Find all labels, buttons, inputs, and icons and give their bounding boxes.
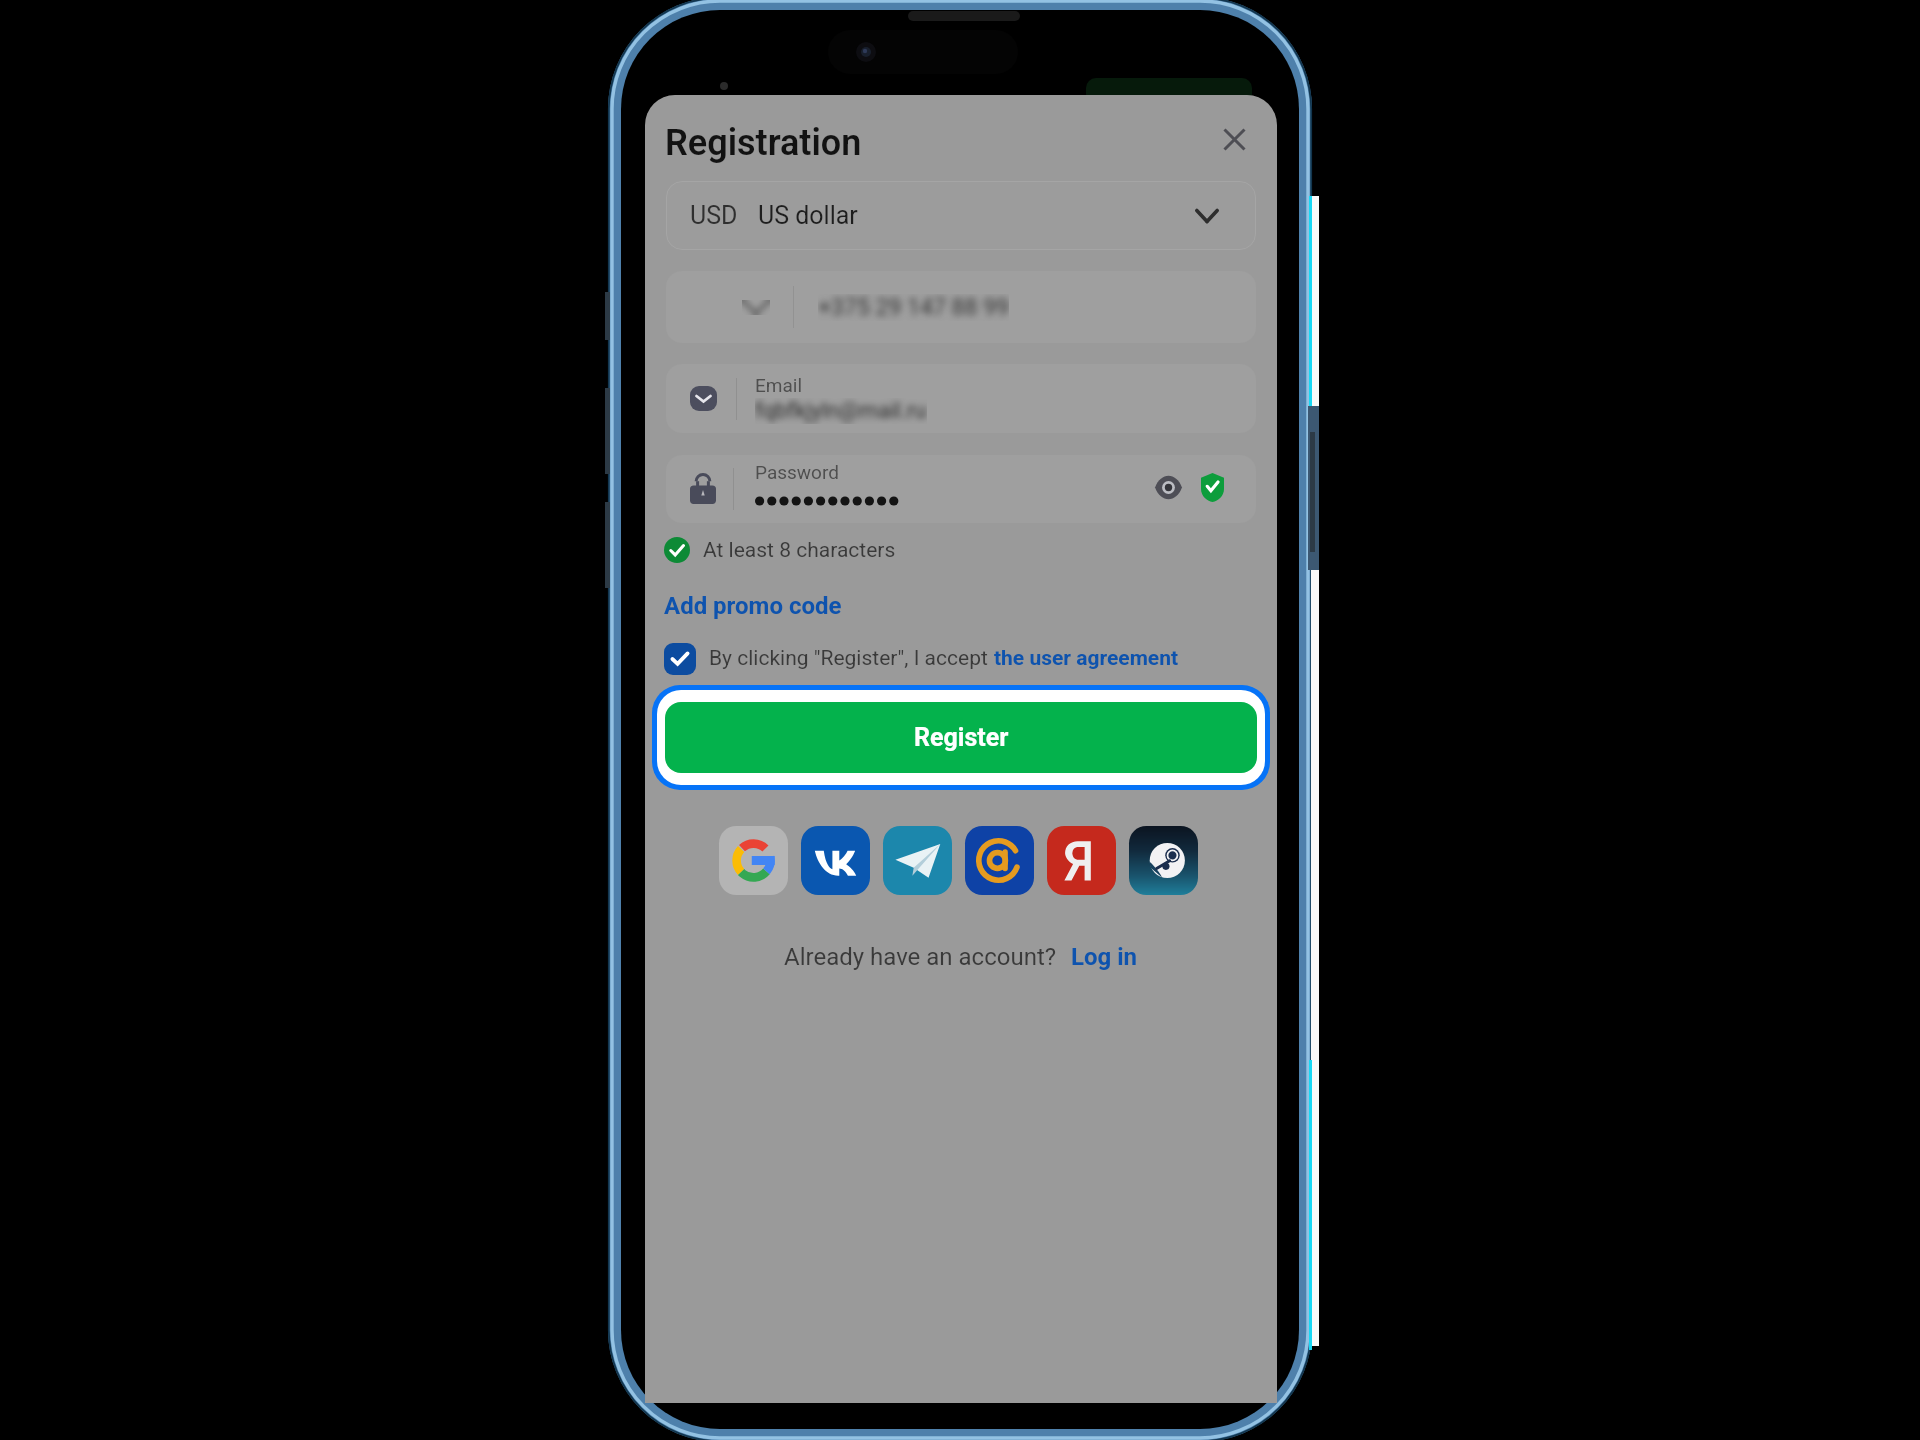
button[interactable]: Register	[665, 702, 1257, 773]
staticText: Log in	[1071, 943, 1138, 971]
button[interactable]: +375 29 147 88 99	[666, 271, 1256, 343]
button[interactable]: Password	[666, 455, 1256, 523]
button[interactable]: Sign in with Steam	[1129, 826, 1198, 895]
button[interactable]: Close	[1212, 117, 1256, 161]
button[interactable]: Sign in with Telegram	[883, 826, 952, 895]
staticText: Already have an account?	[784, 943, 1057, 971]
button[interactable]: Sign in with VK	[801, 826, 870, 895]
staticText: US dollar	[758, 201, 858, 230]
button[interactable]: Log in	[1071, 943, 1138, 971]
button[interactable]: Password secure	[1196, 473, 1228, 505]
button[interactable]: Sign in with Google	[719, 826, 788, 895]
staticText: Add promo code	[664, 592, 842, 620]
button[interactable]: Email	[666, 364, 1256, 433]
staticText: Register	[914, 723, 1009, 752]
staticText: +375 29 147 88 99	[818, 294, 1009, 321]
staticText: At least 8 characters	[703, 538, 896, 563]
button[interactable]: Sign in with Yandex	[1047, 826, 1116, 895]
staticText: the user agreement	[994, 646, 1179, 671]
button[interactable]: By clicking "Register", I accept	[664, 642, 1277, 675]
staticText: Registration	[665, 122, 862, 164]
staticText: By clicking "Register", I accept	[709, 646, 994, 671]
button[interactable]: Add promo code	[664, 589, 842, 623]
staticText: Password	[755, 461, 839, 483]
button[interactable]: USD	[666, 181, 1256, 250]
staticText: fqbfkjyln@mail.ru	[755, 398, 927, 424]
staticText: Email	[755, 374, 803, 396]
button[interactable]: Show password	[1146, 467, 1190, 511]
button[interactable]: Sign in with Mail.ru	[965, 826, 1034, 895]
staticText: USD	[690, 201, 738, 230]
